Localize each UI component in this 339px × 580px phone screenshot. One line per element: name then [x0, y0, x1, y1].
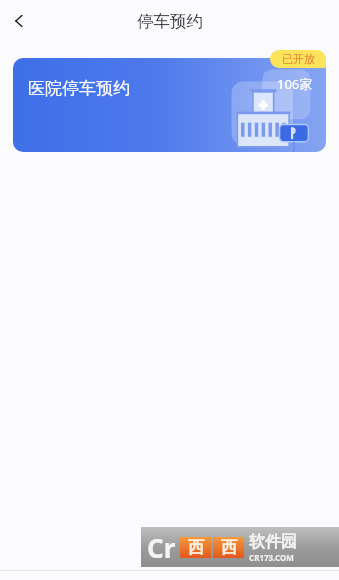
button[interactable]: 医院停车预约 — [13, 58, 326, 152]
staticText: 医院停车预约 — [28, 78, 130, 99]
staticText: 停车预约 — [137, 11, 203, 32]
staticText: CR173.COM — [249, 552, 294, 563]
staticText: 已开放 — [282, 52, 315, 66]
staticText: 西 — [188, 538, 204, 558]
button[interactable]: Back — [0, 1, 40, 41]
button[interactable]: 已开放 — [270, 50, 326, 68]
staticText: 软件园 — [249, 532, 297, 552]
staticText: Cr — [147, 530, 176, 565]
staticText: 106家 — [277, 75, 313, 93]
staticText: 西 — [221, 538, 237, 558]
